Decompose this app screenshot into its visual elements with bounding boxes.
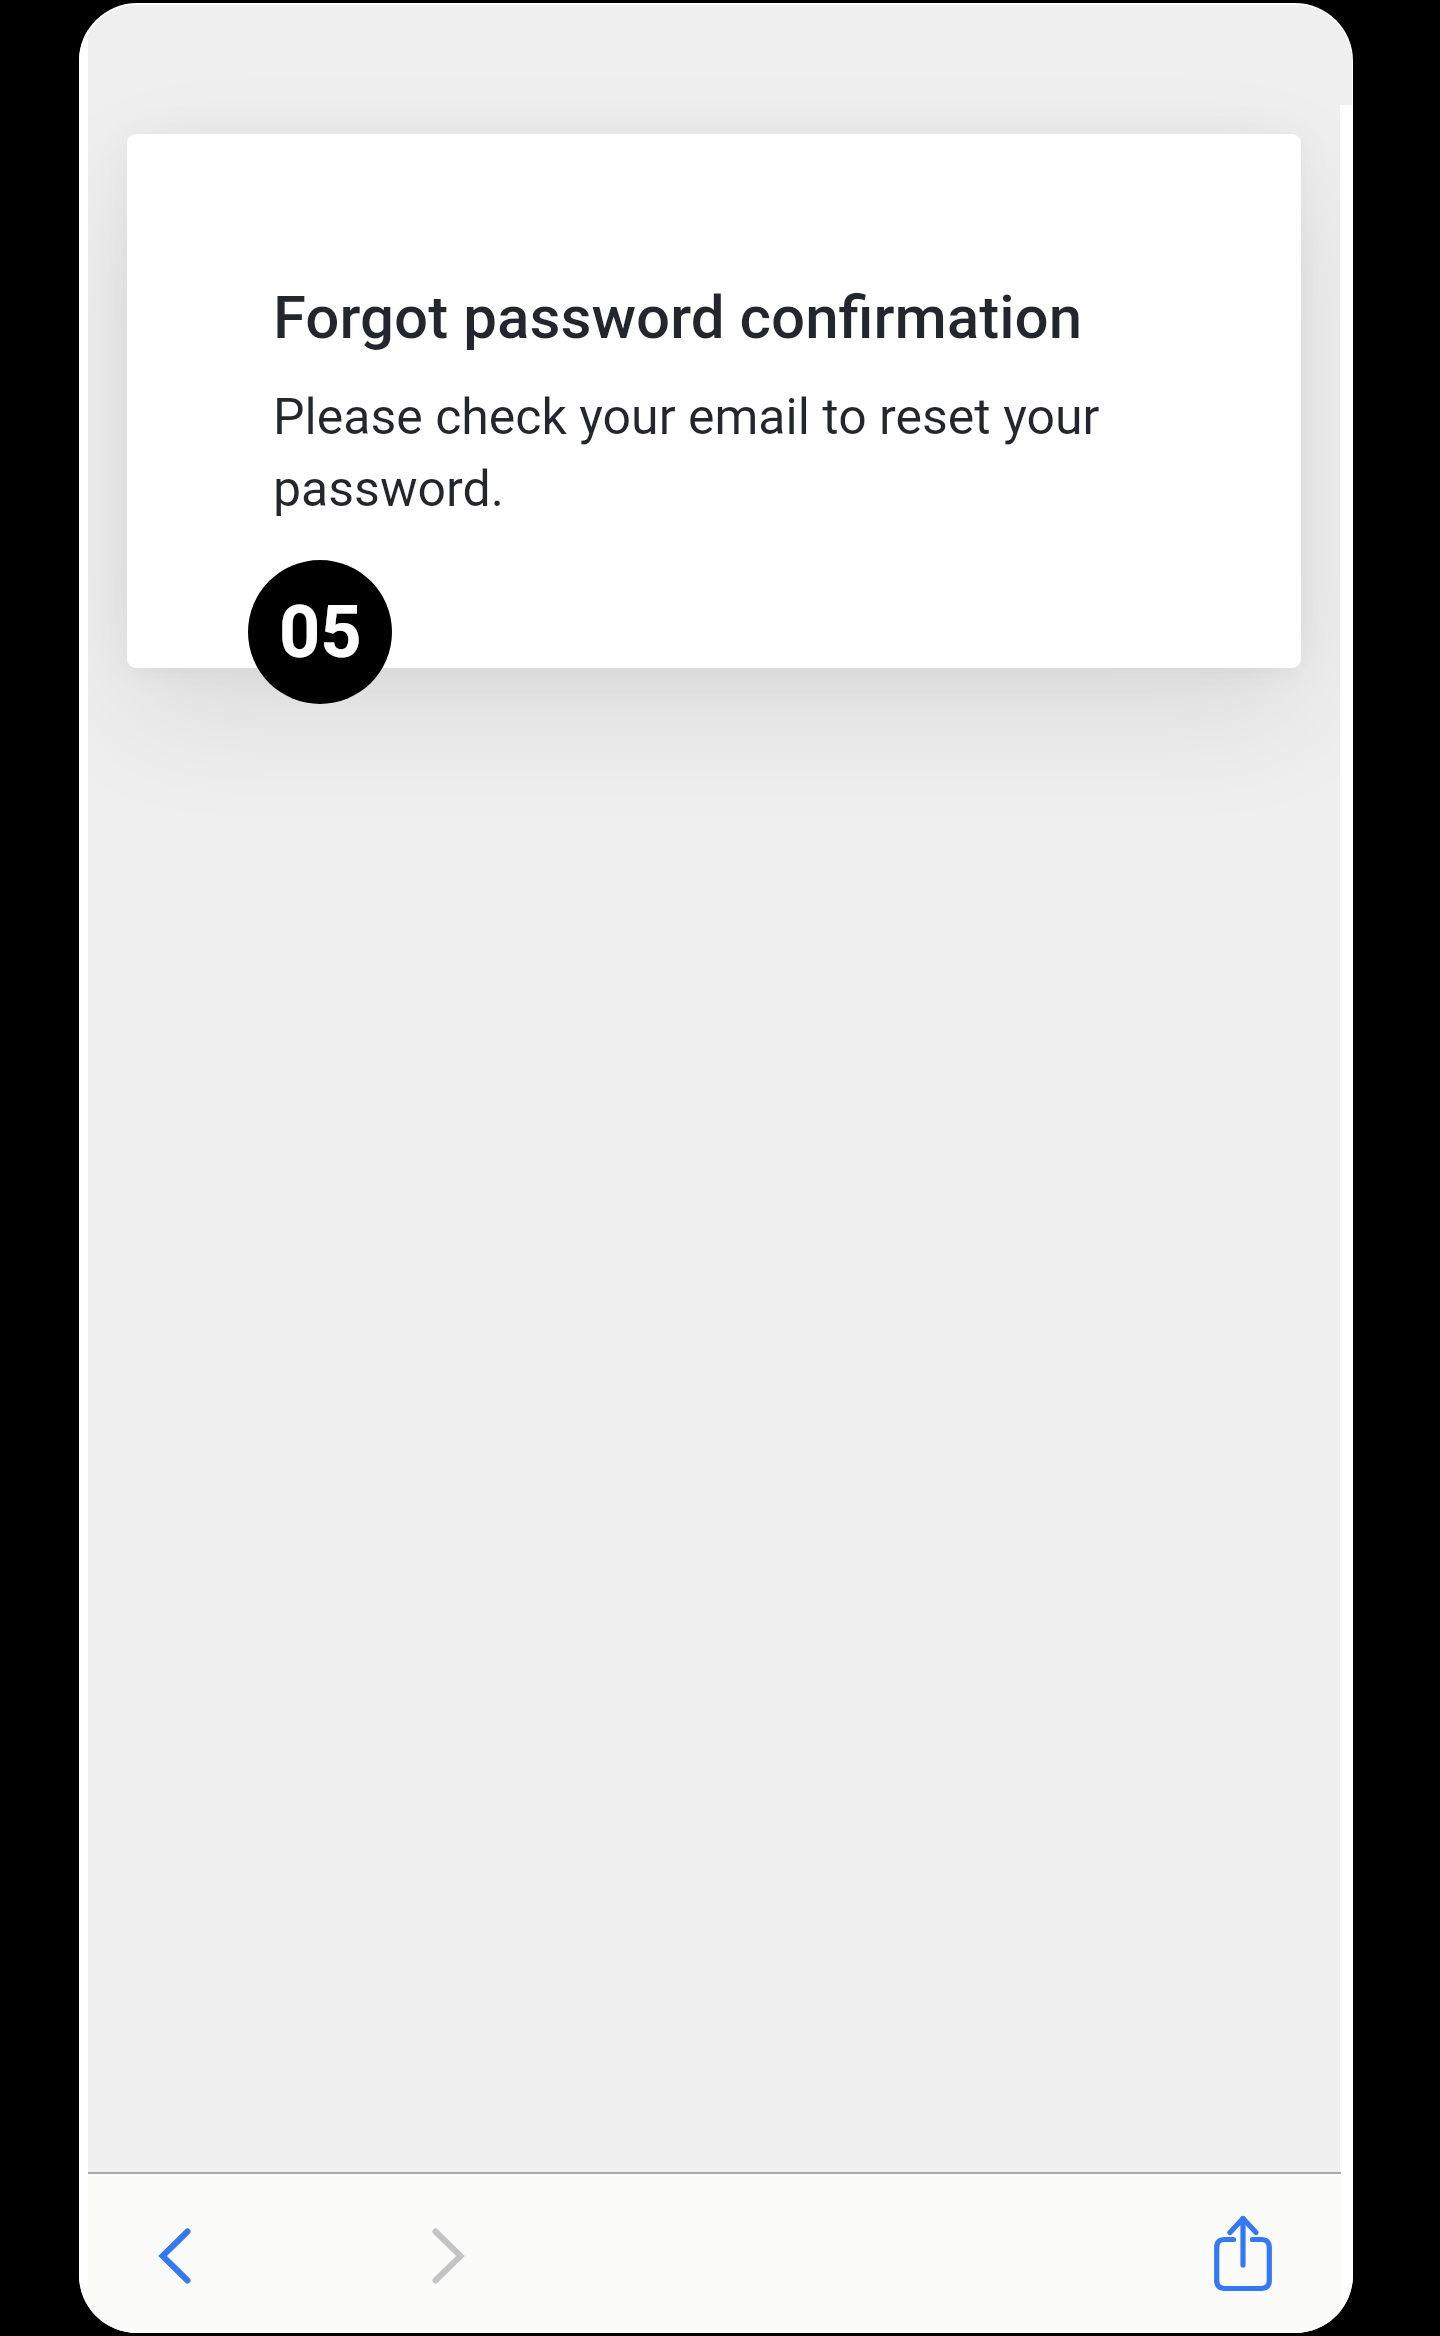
staticText: 05 xyxy=(279,590,362,674)
button[interactable]: Share xyxy=(1183,2196,1303,2316)
button[interactable]: Back xyxy=(115,2196,235,2316)
staticText: Please check your email to reset your pa… xyxy=(273,377,1163,521)
staticText: Forgot password confirmation xyxy=(273,283,1083,353)
button[interactable]: Forward xyxy=(388,2196,508,2316)
button[interactable]: 05 xyxy=(248,560,392,704)
button[interactable]: Forgot password confirmation xyxy=(127,134,1301,668)
